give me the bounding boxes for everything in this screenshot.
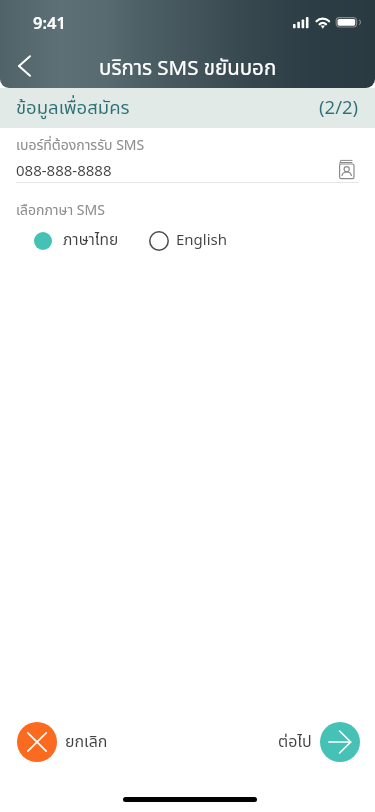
staticText: English xyxy=(176,229,228,252)
button[interactable]: English xyxy=(145,227,228,254)
button[interactable]: Next xyxy=(320,722,360,762)
button[interactable]: ยกเลิก xyxy=(65,730,108,754)
staticText: 9:41 xyxy=(33,11,66,33)
staticText: เบอร์ที่ต้องการรับ SMS xyxy=(16,135,145,156)
staticText: 088-888-8888 xyxy=(16,160,112,183)
staticText: ภาษาไทย xyxy=(63,229,119,252)
staticText: (2/2) xyxy=(319,94,359,122)
staticText: บริการ SMS ขยันบอก xyxy=(99,53,277,84)
button[interactable]: ต่อไป xyxy=(278,730,312,754)
button[interactable]: Cancel xyxy=(17,722,57,762)
button[interactable]: Back xyxy=(3,44,47,88)
staticText: เลือกภาษา SMS xyxy=(16,200,105,221)
staticText: ข้อมูลเพื่อสมัคร xyxy=(16,94,130,122)
button[interactable]: ภาษาไทย xyxy=(29,227,119,254)
button[interactable]: Choose from contacts xyxy=(334,152,360,182)
